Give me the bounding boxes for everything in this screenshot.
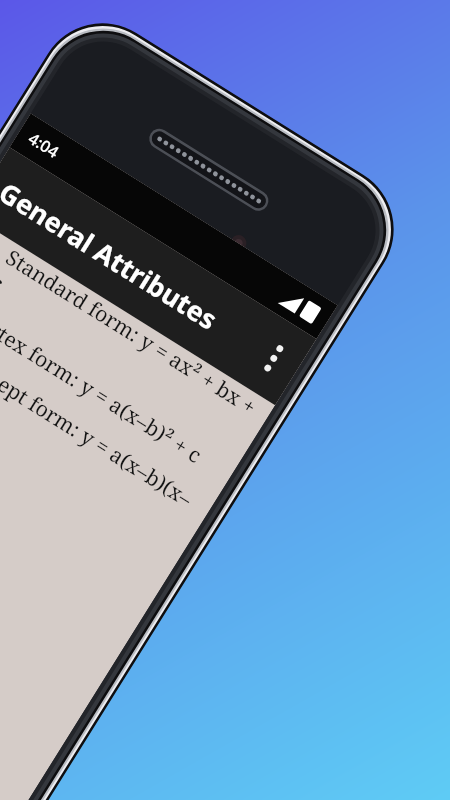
button[interactable]: More options bbox=[238, 322, 310, 394]
staticText: 4:04 bbox=[24, 127, 63, 163]
staticText: Vertex form: y = a(x–b)² + c bbox=[0, 302, 207, 470]
button[interactable] bbox=[0, 356, 186, 595]
button[interactable]: Vertex form: y = a(x–b)² + c bbox=[0, 261, 245, 500]
button[interactable]: Intercept form: y = a(x–b)(x–c) bbox=[0, 308, 216, 548]
staticText: General Attributes bbox=[0, 173, 225, 338]
button[interactable]: Standard form: y = ax² + bx + c bbox=[0, 213, 275, 453]
staticText: Intercept form: y = a(x–b)(x–c) bbox=[0, 338, 206, 541]
staticText: Standard form: y = ax² + bx + c bbox=[0, 243, 265, 446]
